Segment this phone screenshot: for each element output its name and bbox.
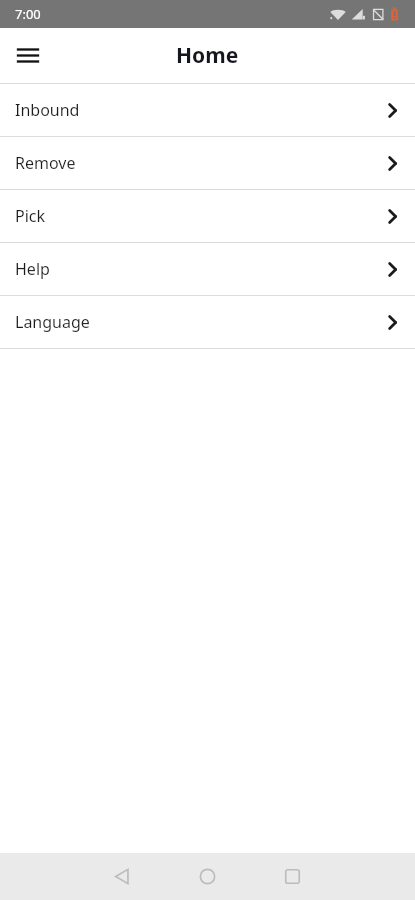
staticText: Inbound	[15, 99, 80, 121]
button[interactable]: Recent apps	[250, 853, 335, 900]
button[interactable]: Language	[0, 296, 415, 348]
button[interactable]: Back	[80, 853, 165, 900]
staticText: Help	[15, 258, 50, 280]
staticText: Pick	[15, 205, 46, 227]
button[interactable]: Open navigation menu	[0, 28, 56, 83]
button[interactable]: Inbound	[0, 84, 415, 136]
staticText: Language	[15, 311, 90, 333]
staticText: Remove	[15, 152, 76, 174]
staticText: Home	[176, 41, 239, 70]
button[interactable]: Remove	[0, 137, 415, 189]
button[interactable]: Help	[0, 243, 415, 295]
button[interactable]: Home	[165, 853, 250, 900]
staticText: 7:00	[15, 5, 41, 23]
button[interactable]: Pick	[0, 190, 415, 242]
